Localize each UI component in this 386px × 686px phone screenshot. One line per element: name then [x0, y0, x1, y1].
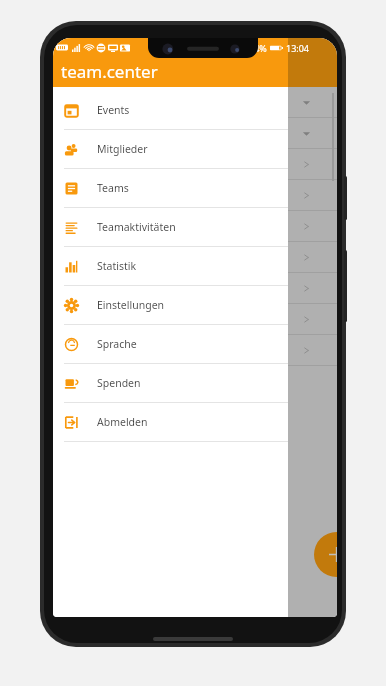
button[interactable]: Sprache: [53, 325, 288, 363]
button[interactable]: Abmelden: [53, 403, 288, 441]
staticText: Abmelden: [97, 415, 148, 429]
staticText: team.center: [61, 60, 158, 83]
button[interactable]: Teamaktivitäten: [53, 208, 288, 246]
staticText: Events: [97, 103, 130, 117]
button[interactable]: Events: [53, 91, 288, 129]
button[interactable]: Mitglieder: [53, 130, 288, 168]
staticText: Teams: [97, 181, 129, 195]
button[interactable]: Statistik: [53, 247, 288, 285]
button[interactable]: Spenden: [53, 364, 288, 402]
staticText: Statistik: [97, 259, 137, 273]
button[interactable]: Add: [314, 532, 337, 577]
button[interactable]: Einstellungen: [53, 286, 288, 324]
staticText: Spenden: [97, 376, 141, 390]
staticText: Einstellungen: [97, 298, 165, 312]
staticText: Mitglieder: [97, 142, 148, 156]
staticText: Teamaktivitäten: [97, 220, 176, 234]
staticText: 13:04: [286, 42, 310, 54]
button[interactable]: Teams: [53, 169, 288, 207]
staticText: 94%: [249, 42, 267, 54]
staticText: Sprache: [97, 337, 137, 351]
